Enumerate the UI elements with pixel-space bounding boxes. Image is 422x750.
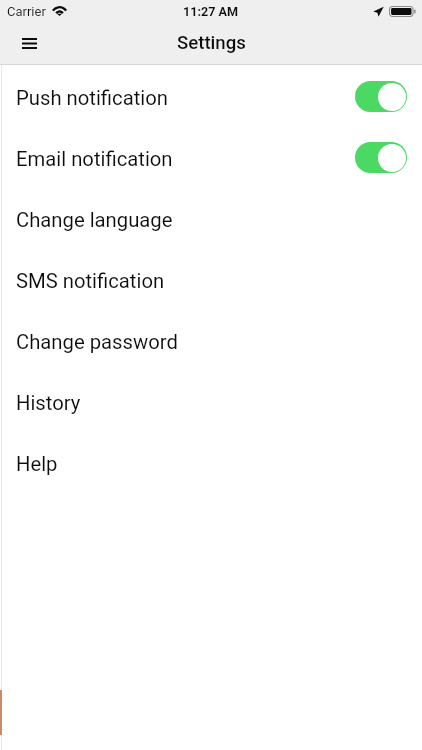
button[interactable]: Toggle on [355,142,407,173]
button[interactable]: Push notification [0,67,422,128]
button[interactable]: SMS notification [0,250,422,311]
staticText: SMS notification [16,269,165,293]
button[interactable]: Menu [4,25,38,59]
staticText: Email notification [16,147,173,171]
button[interactable]: Toggle on [355,81,407,112]
staticText: Settings [177,32,246,54]
staticText: History [16,391,81,415]
button[interactable]: Email notification [0,128,422,189]
staticText: Change password [16,330,178,354]
button[interactable]: Change password [0,311,422,372]
staticText: Push notification [16,86,168,110]
button[interactable]: Change language [0,189,422,250]
staticText: 11:27 AM [183,4,239,19]
button[interactable]: History [0,372,422,433]
button[interactable]: Help [0,433,422,494]
staticText: Change language [16,208,173,232]
staticText: Help [16,452,58,476]
staticText: Carrier [7,4,46,19]
